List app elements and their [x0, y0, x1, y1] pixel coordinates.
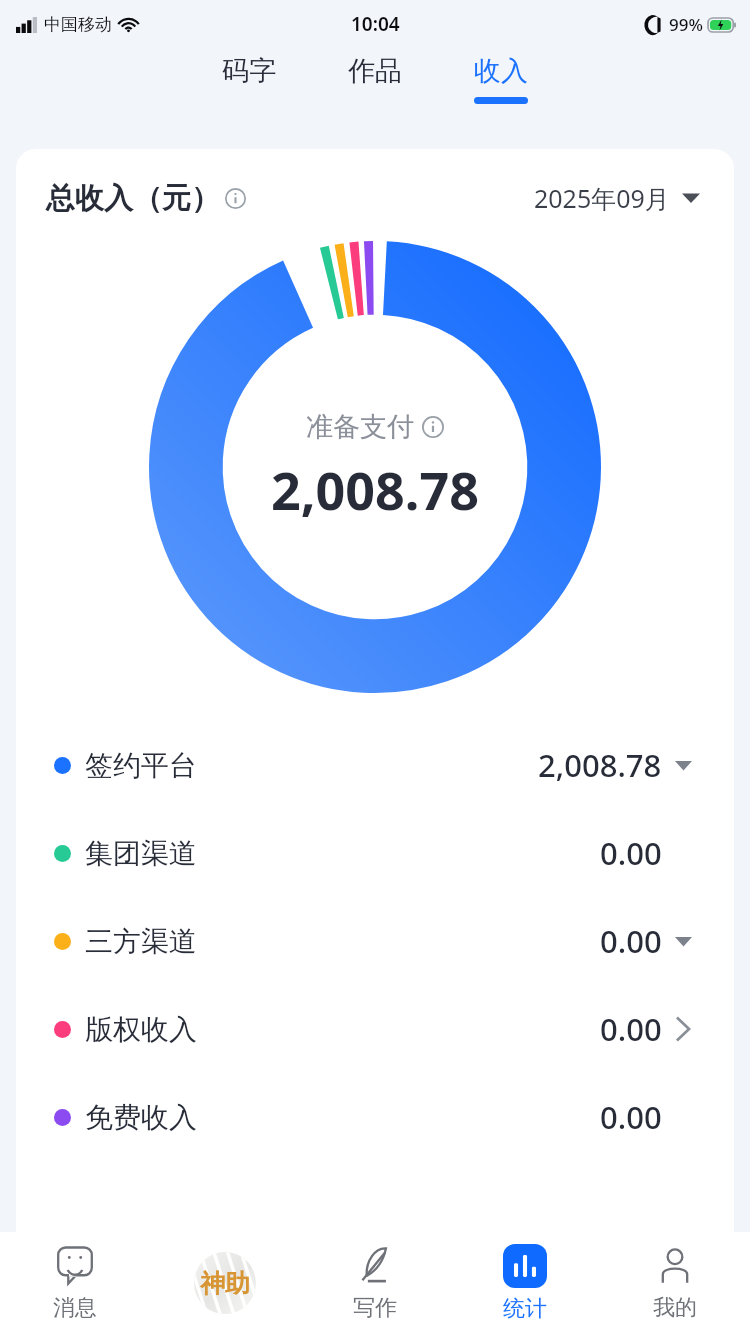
button[interactable]: 消息 — [0, 1232, 150, 1334]
button[interactable]: 免费收入 — [16, 1073, 734, 1161]
staticText: 2,008.78 — [538, 744, 662, 786]
staticText: 总收入（元） — [46, 180, 220, 217]
staticText: 签约平台 — [85, 748, 197, 783]
staticText: 统计 — [503, 1295, 547, 1323]
button[interactable]: 收入 — [466, 48, 536, 110]
button[interactable]: 码字 — [214, 48, 284, 110]
button[interactable]: 我的 — [600, 1232, 750, 1334]
staticText: 0.00 — [600, 832, 662, 874]
staticText: 作品 — [348, 54, 402, 88]
button[interactable]: 三方渠道 — [16, 897, 734, 985]
staticText: 10:04 — [351, 11, 400, 37]
staticText: 0.00 — [600, 920, 662, 962]
button[interactable]: 神助 — [150, 1232, 300, 1334]
staticText: 神助 — [200, 1268, 250, 1299]
staticText: 版权收入 — [85, 1012, 197, 1047]
button[interactable]: 签约平台 — [16, 721, 734, 809]
button[interactable]: 版权收入 — [16, 985, 734, 1073]
staticText: 三方渠道 — [85, 924, 197, 959]
staticText: 消息 — [53, 1294, 97, 1322]
button[interactable]: 总收入（元） — [46, 180, 246, 217]
button[interactable]: 集团渠道 — [16, 809, 734, 897]
staticText: 准备支付 — [306, 410, 414, 444]
staticText: 2,008.78 — [271, 454, 479, 525]
button[interactable]: 2025年09月 — [530, 177, 704, 219]
staticText: 码字 — [222, 54, 276, 88]
staticText: 0.00 — [600, 1008, 662, 1050]
staticText: 免费收入 — [85, 1100, 197, 1135]
staticText: 收入 — [474, 54, 528, 88]
button[interactable]: 作品 — [340, 48, 410, 110]
staticText: 我的 — [653, 1294, 697, 1322]
button[interactable]: 写作 — [300, 1232, 450, 1334]
staticText: 0.00 — [600, 1096, 662, 1138]
staticText: 写作 — [353, 1294, 397, 1322]
staticText: 中国移动 — [44, 14, 112, 35]
staticText: 2025年09月 — [534, 181, 670, 215]
staticText: 99% — [669, 13, 703, 36]
staticText: 集团渠道 — [85, 836, 197, 871]
button[interactable]: 统计 — [450, 1232, 600, 1334]
